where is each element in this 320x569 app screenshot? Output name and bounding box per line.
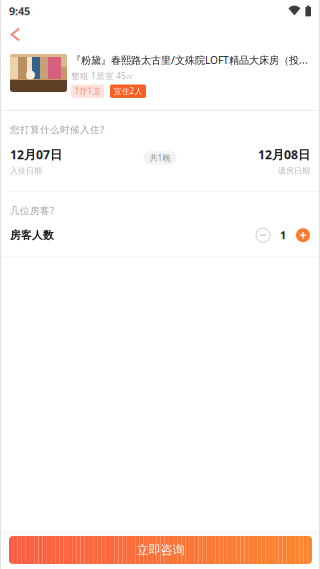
staticText: 9:45 — [9, 4, 30, 18]
staticText: 1 — [280, 228, 286, 242]
staticText: 『粉黛』春熙路太古里/文殊院LOFT精品大床房（投影电… — [71, 53, 315, 67]
staticText: 您打算什么时候入住? — [10, 123, 104, 136]
staticText: 退房日期 — [278, 166, 310, 176]
button[interactable]: Back — [0, 22, 32, 48]
button[interactable]: 立即咨询 — [0, 536, 320, 564]
staticText: 几位房客? — [10, 204, 54, 217]
button[interactable]: Decrease guest count — [256, 228, 270, 242]
button[interactable]: 您打算什么时候入住? — [0, 111, 320, 191]
staticText: 共1晚 — [149, 152, 170, 163]
button[interactable]: Increase guest count — [296, 228, 310, 242]
staticText: 1厅1卫 — [74, 86, 100, 96]
staticText: 12月08日 — [258, 146, 310, 163]
staticText: 房客人数 — [10, 228, 54, 242]
staticText: 入住日期 — [10, 166, 42, 176]
staticText: 立即咨询 — [136, 542, 184, 558]
button[interactable]: 『粉黛』春熙路太古里/文殊院LOFT精品大床房（投影电… — [0, 48, 320, 110]
staticText: 12月07日 — [10, 146, 62, 163]
staticText: 整租 1居室 45㎡ — [71, 70, 135, 81]
staticText: 宜住2人 — [113, 86, 142, 96]
